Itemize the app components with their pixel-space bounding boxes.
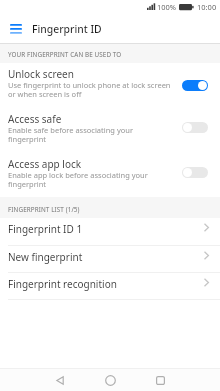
staticText: 100% (157, 2, 177, 12)
staticText: Fingerprint recognition (8, 277, 117, 291)
staticText: Access safe (8, 112, 62, 126)
staticText: Enable app lock before associating your … (8, 170, 148, 189)
staticText: Fingerprint ID 1 (8, 222, 83, 236)
button[interactable] (6, 19, 26, 39)
button[interactable] (182, 122, 208, 133)
staticText: Use fingerprint to unlock phone at lock … (8, 80, 171, 99)
button[interactable]: Access safe (0, 108, 220, 153)
staticText: Enable safe before associating your fing… (8, 125, 133, 144)
button[interactable] (40, 369, 80, 391)
button[interactable] (90, 369, 130, 391)
button[interactable]: New fingerprint (0, 246, 220, 273)
staticText: Access app lock (8, 157, 82, 171)
staticText: 10:00 (197, 2, 217, 12)
button[interactable] (182, 167, 208, 178)
button[interactable]: Fingerprint recognition (0, 273, 220, 300)
button[interactable] (182, 80, 208, 91)
button[interactable]: Unlock screen (0, 63, 220, 108)
button[interactable] (140, 369, 180, 391)
button[interactable]: Access app lock (0, 153, 220, 197)
staticText: YOUR FINGERPRINT CAN BE USED TO (8, 50, 122, 59)
staticText: New fingerprint (8, 250, 83, 264)
button[interactable]: Fingerprint ID 1 (0, 218, 220, 246)
staticText: Unlock screen (8, 67, 74, 81)
staticText: Fingerprint ID (32, 22, 102, 36)
staticText: FINGERPRINT LIST (1/5) (8, 205, 80, 214)
